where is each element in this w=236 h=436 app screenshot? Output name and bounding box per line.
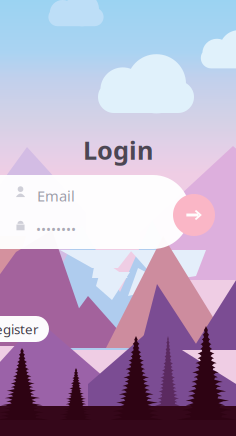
staticText: •••••••• bbox=[36, 220, 76, 238]
staticText: Register bbox=[0, 320, 39, 338]
staticText: Login bbox=[83, 133, 153, 167]
staticText: Email bbox=[37, 186, 75, 205]
